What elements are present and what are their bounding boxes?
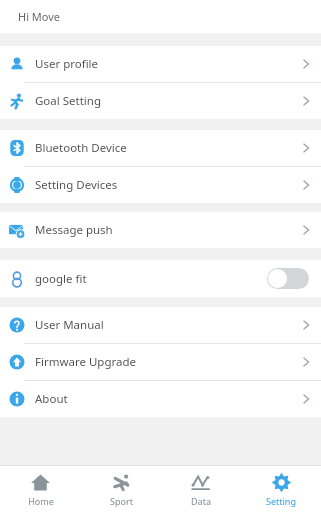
- button[interactable]: Sport: [81, 466, 161, 512]
- staticText: Hi Move: [18, 9, 61, 24]
- button[interactable]: google fit: [0, 260, 321, 297]
- staticText: User profile: [35, 56, 99, 72]
- staticText: Setting: [266, 495, 296, 507]
- button[interactable]: User Manual: [0, 307, 321, 343]
- staticText: About: [35, 391, 68, 407]
- button[interactable]: Data: [161, 466, 241, 512]
- button[interactable]: User profile: [0, 46, 321, 82]
- button[interactable]: Toggle google fit: [267, 268, 309, 289]
- button[interactable]: About: [0, 381, 321, 417]
- staticText: Firmware Upgrade: [35, 354, 137, 370]
- staticText: Data: [191, 495, 211, 507]
- button[interactable]: Bluetooth Device: [0, 130, 321, 166]
- button[interactable]: Setting Devices: [0, 167, 321, 203]
- staticText: Sport: [110, 495, 133, 507]
- staticText: google fit: [35, 271, 87, 287]
- button[interactable]: Firmware Upgrade: [0, 344, 321, 380]
- staticText: Home: [28, 495, 54, 507]
- staticText: Bluetooth Device: [35, 140, 127, 156]
- button[interactable]: Goal Setting: [0, 83, 321, 119]
- staticText: Message push: [35, 222, 113, 238]
- staticText: Goal Setting: [35, 93, 101, 109]
- staticText: User Manual: [35, 317, 104, 333]
- staticText: Setting Devices: [35, 177, 118, 193]
- button[interactable]: Message push: [0, 212, 321, 248]
- button[interactable]: Home: [0, 466, 81, 512]
- button[interactable]: Setting: [241, 466, 321, 512]
